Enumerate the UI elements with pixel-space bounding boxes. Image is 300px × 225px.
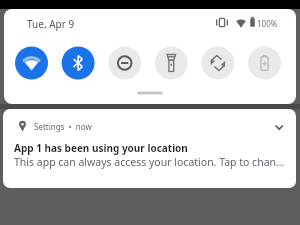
button[interactable] [109,47,141,79]
staticText: Settings • now [34,121,92,132]
staticText: Tue, Apr 9 [27,17,75,31]
staticText: This app can always access your location… [14,155,296,169]
button[interactable] [249,47,281,79]
button[interactable] [202,47,234,79]
staticText: App 1 has been using your location [14,141,188,155]
button[interactable] [155,47,187,79]
button[interactable]: Settings • now [3,109,296,188]
staticText: 100% [257,18,278,29]
button[interactable] [16,47,48,79]
button[interactable] [62,47,94,79]
